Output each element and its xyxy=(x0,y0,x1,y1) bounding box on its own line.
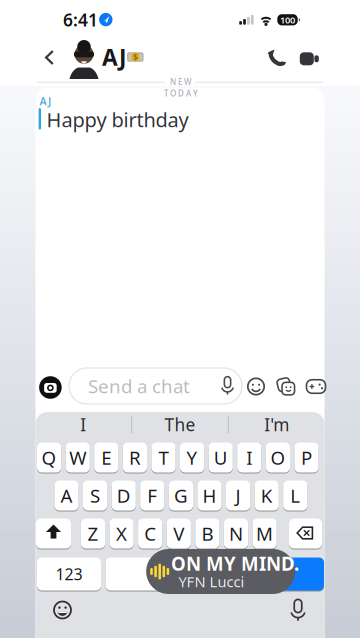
staticText: G xyxy=(174,483,188,508)
staticText: X xyxy=(116,521,127,546)
button[interactable]: N xyxy=(224,518,248,549)
staticText: M xyxy=(256,521,273,546)
button[interactable]: J xyxy=(226,480,250,511)
staticText: $ xyxy=(133,51,138,63)
button[interactable]: I xyxy=(38,411,128,437)
staticText: W xyxy=(69,445,86,470)
staticText: U xyxy=(214,445,228,470)
button[interactable]: AJ profile xyxy=(60,35,150,79)
staticText: N xyxy=(229,521,243,546)
button[interactable]: D xyxy=(112,480,136,511)
button[interactable]: P xyxy=(294,442,319,473)
staticText: 6:41 xyxy=(63,8,98,31)
button[interactable]: Send a chat xyxy=(69,368,242,404)
button[interactable]: Emoji xyxy=(241,371,271,401)
staticText: R xyxy=(129,445,141,470)
staticText: P xyxy=(301,445,312,470)
button[interactable]: B xyxy=(195,518,219,549)
staticText: YFN Lucci xyxy=(178,572,244,591)
staticText: Y xyxy=(187,445,198,470)
button[interactable]: E xyxy=(94,442,118,473)
button[interactable]: Back xyxy=(35,42,63,72)
button[interactable]: Dictation xyxy=(283,595,313,625)
staticText: AJ xyxy=(102,42,127,72)
staticText: C xyxy=(144,521,156,546)
staticText: I xyxy=(80,413,86,436)
button[interactable]: Emoji keyboard xyxy=(47,595,77,625)
staticText: B xyxy=(201,521,213,546)
button[interactable]: H xyxy=(197,480,222,511)
staticText: J xyxy=(236,483,241,508)
button[interactable]: Camera xyxy=(35,372,65,402)
button[interactable]: Q xyxy=(37,442,61,473)
button[interactable]: Voice message xyxy=(214,371,240,401)
button[interactable]: Delete xyxy=(289,518,322,549)
staticText: F xyxy=(147,483,157,508)
staticText: S xyxy=(90,483,100,508)
button[interactable]: X xyxy=(109,518,134,549)
staticText: D xyxy=(117,483,131,508)
button[interactable]: C xyxy=(138,518,162,549)
staticText: T O D A Y xyxy=(164,88,198,99)
button[interactable]: M xyxy=(252,518,277,549)
button[interactable]: 123 xyxy=(37,557,101,591)
button[interactable]: I xyxy=(237,442,261,473)
staticText: V xyxy=(173,521,184,546)
staticText: 100 xyxy=(280,14,295,26)
staticText: K xyxy=(261,483,273,508)
staticText: N E W xyxy=(170,77,192,87)
button[interactable]: Games xyxy=(301,371,331,401)
staticText: T xyxy=(158,445,168,470)
button[interactable]: I'm xyxy=(232,411,322,437)
staticText: 123 xyxy=(55,563,82,585)
button[interactable]: S xyxy=(83,480,107,511)
button[interactable]: Voice call xyxy=(259,41,293,75)
button[interactable]: Video call xyxy=(292,41,326,75)
staticText: AJ xyxy=(39,94,51,108)
button[interactable]: L xyxy=(283,480,307,511)
staticText: The xyxy=(164,413,195,436)
button[interactable]: The xyxy=(135,411,225,437)
button[interactable]: R xyxy=(123,442,147,473)
staticText: O xyxy=(270,445,285,470)
button[interactable]: O xyxy=(266,442,290,473)
button[interactable]: W xyxy=(66,442,90,473)
button[interactable]: Stickers xyxy=(271,371,301,401)
button[interactable]: Y xyxy=(180,442,204,473)
button[interactable]: Z xyxy=(81,518,105,549)
button[interactable]: Space xyxy=(105,557,251,591)
button[interactable]: T xyxy=(151,442,176,473)
staticText: Q xyxy=(42,445,57,470)
button[interactable]: A xyxy=(54,480,79,511)
button[interactable]: Now playing: ON MY MIND by YFN Lucci xyxy=(146,549,295,594)
button[interactable]: Shift xyxy=(36,518,71,549)
staticText: A xyxy=(60,483,72,508)
staticText: L xyxy=(290,483,300,508)
staticText: ON MY MIND. xyxy=(171,551,299,576)
button[interactable]: V xyxy=(167,518,191,549)
staticText: Send a chat xyxy=(88,374,190,398)
button[interactable]: F xyxy=(140,480,164,511)
button[interactable]: U xyxy=(209,442,233,473)
staticText: Happy birthday xyxy=(46,106,188,133)
staticText: I'm xyxy=(264,413,289,436)
button[interactable]: K xyxy=(255,480,279,511)
button[interactable]: G xyxy=(169,480,193,511)
button[interactable]: Return xyxy=(256,557,324,591)
staticText: Z xyxy=(87,521,98,546)
staticText: H xyxy=(202,483,216,508)
staticText: E xyxy=(101,445,111,470)
staticText: I xyxy=(246,445,252,470)
